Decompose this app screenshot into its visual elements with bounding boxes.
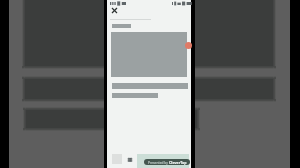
button[interactable]: Apps	[124, 154, 135, 165]
staticText: CleverTap	[169, 160, 187, 165]
button[interactable]: Close	[109, 5, 120, 16]
staticText: Presented by	[148, 161, 169, 165]
